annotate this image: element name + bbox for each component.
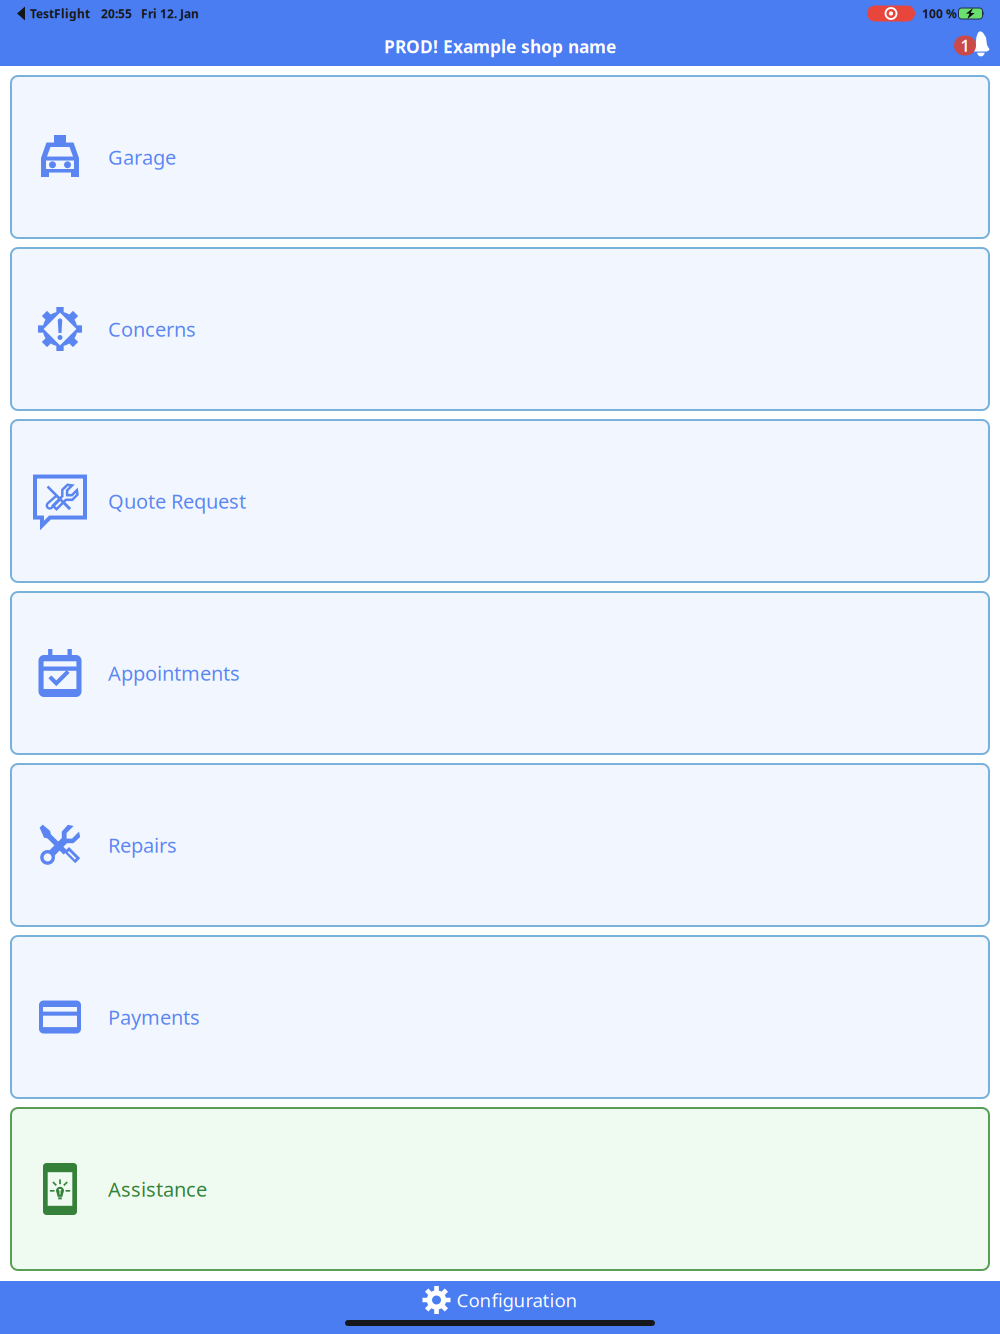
- staticText: TestFlight: [30, 5, 90, 21]
- staticText: PROD! Example shop name: [384, 35, 616, 58]
- button[interactable]: Quote Request: [11, 420, 989, 582]
- staticText: Quote Request: [108, 488, 246, 514]
- staticText: Payments: [108, 1004, 200, 1030]
- staticText: Concerns: [108, 316, 196, 342]
- staticText: Assistance: [108, 1176, 207, 1202]
- button[interactable]: Notifications: [928, 27, 990, 66]
- button[interactable]: Configuration: [0, 1281, 1000, 1314]
- button[interactable]: Garage: [11, 76, 989, 238]
- button[interactable]: Concerns: [11, 248, 989, 410]
- button[interactable]: Assistance: [11, 1108, 989, 1270]
- button[interactable]: Appointments: [11, 592, 989, 754]
- staticText: 20:55: [101, 5, 132, 21]
- button[interactable]: Repairs: [11, 764, 989, 926]
- staticText: Repairs: [108, 832, 177, 858]
- staticText: Appointments: [108, 660, 240, 686]
- button[interactable]: Payments: [11, 936, 989, 1098]
- staticText: Garage: [108, 144, 176, 170]
- staticText: 1: [960, 35, 969, 56]
- staticText: Configuration: [456, 1288, 577, 1312]
- staticText: 100 %: [922, 5, 957, 21]
- staticText: Fri 12. Jan: [141, 5, 199, 21]
